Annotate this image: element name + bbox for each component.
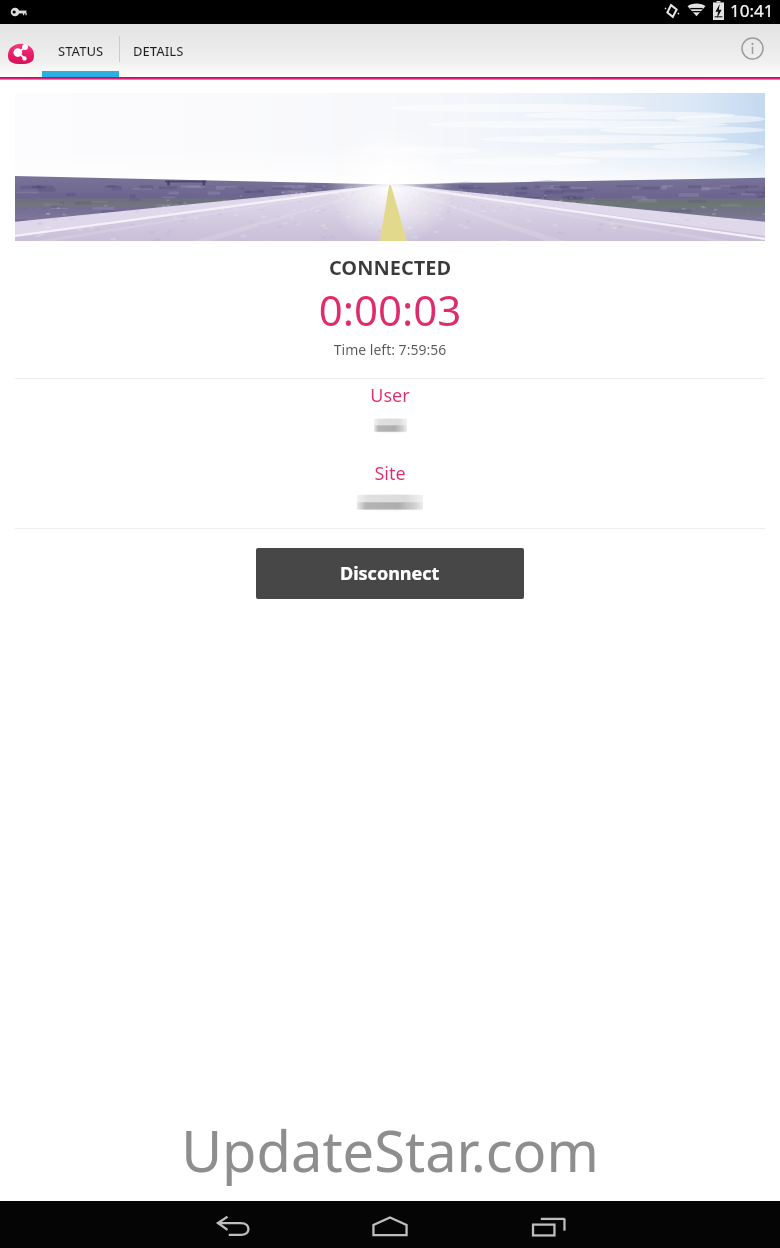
- staticText: Time left: 7:59:56: [0, 340, 780, 359]
- button[interactable]: Recent apps: [521, 1207, 577, 1245]
- button[interactable]: DETAILS: [120, 24, 197, 77]
- staticText: 0:00:03: [0, 281, 780, 338]
- button[interactable]: STATUS: [42, 24, 119, 77]
- staticText: Site: [0, 461, 780, 486]
- staticText: CONNECTED: [0, 254, 780, 281]
- staticText: Disconnect: [340, 561, 440, 586]
- button[interactable]: Back: [206, 1207, 262, 1245]
- button[interactable]: App: [0, 24, 42, 77]
- staticText: 10:41: [730, 0, 774, 22]
- button[interactable]: Home: [362, 1207, 418, 1245]
- staticText: STATUS: [58, 42, 104, 60]
- button[interactable]: Disconnect: [256, 548, 524, 599]
- staticText: DETAILS: [133, 42, 184, 60]
- staticText: User: [0, 383, 780, 408]
- staticText: UpdateStar.com: [0, 1112, 780, 1188]
- button[interactable]: Info: [724, 22, 780, 75]
